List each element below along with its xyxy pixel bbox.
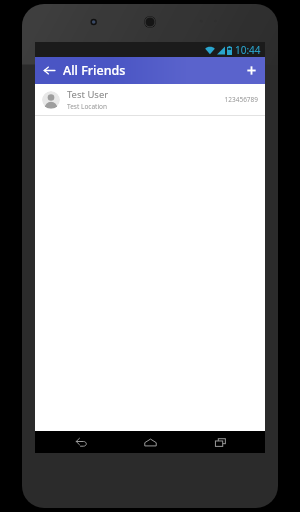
staticText: Test Location (67, 102, 108, 111)
staticText: All Friends (63, 62, 126, 79)
staticText: Test User (67, 88, 109, 101)
button[interactable]: Test User (35, 84, 265, 115)
button[interactable]: Add friend (237, 57, 265, 84)
staticText: 123456789 (224, 95, 258, 104)
button[interactable]: Home (125, 431, 175, 453)
button[interactable]: Back (35, 57, 63, 84)
staticText: 10:44 (235, 43, 261, 57)
button[interactable]: Back (55, 431, 105, 453)
button[interactable]: Recent apps (195, 431, 245, 453)
